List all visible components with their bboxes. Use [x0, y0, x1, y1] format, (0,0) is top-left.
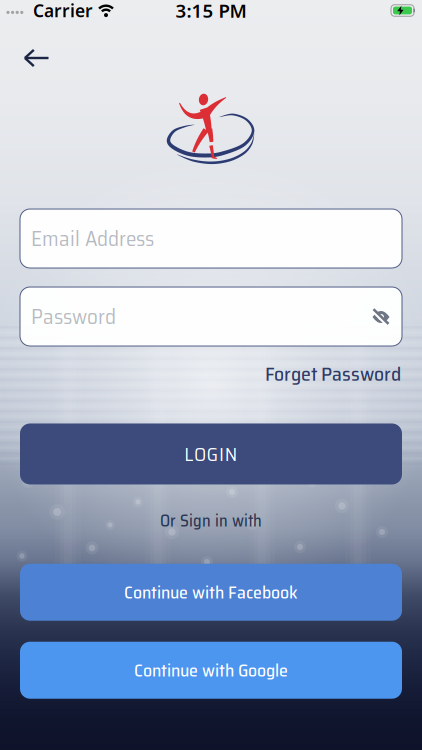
staticText: Forget Password — [265, 358, 401, 389]
button[interactable]: Forget Password — [265, 358, 401, 389]
staticText: Continue with Facebook — [124, 578, 298, 606]
button[interactable] — [20, 43, 53, 73]
button[interactable]: Email Address — [20, 209, 402, 268]
staticText: Carrier — [33, 0, 93, 22]
staticText: Or Sign in with — [160, 507, 262, 534]
button[interactable]: Password — [20, 287, 402, 346]
staticText: Continue with Google — [134, 656, 288, 684]
staticText: Email Address — [31, 222, 154, 255]
button[interactable]: LOGIN — [20, 423, 402, 484]
staticText: 3:15 PM — [175, 0, 246, 23]
button[interactable]: Continue with Facebook — [20, 564, 402, 621]
staticText: Password — [31, 300, 116, 333]
staticText: LOGIN — [184, 438, 238, 470]
button[interactable]: Continue with Google — [20, 642, 402, 699]
